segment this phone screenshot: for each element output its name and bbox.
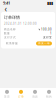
button[interactable]: 首页 <box>0 88 14 100</box>
staticText: 首页 <box>4 95 10 98</box>
staticText: 联系客服 <box>6 42 18 45</box>
staticText: 订单 <box>18 95 24 98</box>
button[interactable]: 再来一单 <box>36 41 52 45</box>
staticText: 支付宝 <box>43 36 52 39</box>
staticText: 再来一单 <box>38 42 50 45</box>
staticText: ￥100.00 <box>38 28 52 31</box>
staticText: 1 <box>50 32 52 35</box>
staticText: ‹ <box>4 4 6 14</box>
staticText: 我的 <box>46 95 52 98</box>
staticText: 商品名称 <box>4 28 16 31</box>
button[interactable]: Back <box>2 5 9 12</box>
staticText: 9:41 <box>3 0 10 6</box>
button[interactable]: 消息 <box>28 88 42 100</box>
staticText: 订单详情 <box>4 15 20 20</box>
staticText: 数量 <box>4 32 10 35</box>
staticText: 消息 <box>32 95 38 98</box>
staticText: 2024-01-01 12:00:00 <box>4 22 37 25</box>
staticText: ▮▮▮ <box>47 1 53 5</box>
button[interactable]: 联系客服 <box>4 41 20 45</box>
button[interactable]: 订单 <box>14 88 28 100</box>
staticText: 支付方式 <box>4 36 16 39</box>
button[interactable]: 我的 <box>42 88 56 100</box>
